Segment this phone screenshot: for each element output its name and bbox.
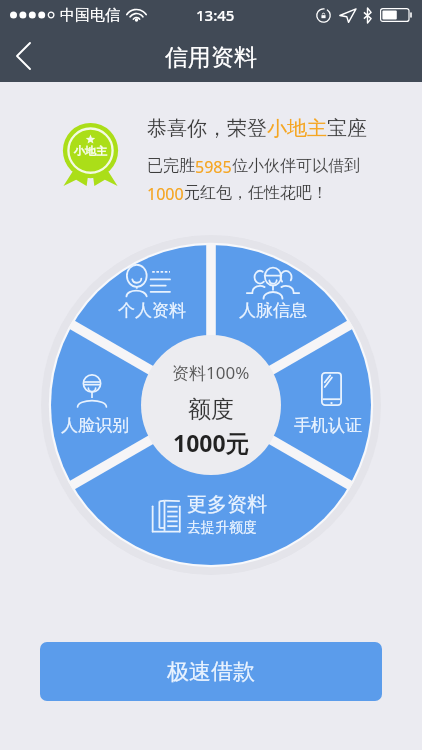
- staticText: 个人资料: [118, 300, 186, 321]
- staticText: 5985: [195, 156, 232, 178]
- staticText: 宝座: [327, 116, 367, 141]
- staticText: 恭喜你，荣登: [147, 116, 267, 141]
- staticText: 更多资料: [187, 492, 267, 517]
- staticText: 人脉信息: [239, 300, 307, 321]
- staticText: 已完胜: [147, 156, 195, 176]
- staticText: 资料100%: [172, 361, 250, 384]
- staticText: 去提升额度: [187, 519, 257, 537]
- staticText: 额度: [188, 395, 234, 424]
- staticText: 小地主: [267, 116, 327, 141]
- staticText: 手机认证: [294, 415, 362, 436]
- staticText: 位小伙伴可以借到: [232, 156, 360, 176]
- staticText: 元红包，任性花吧！: [184, 183, 328, 203]
- staticText: 13:45: [196, 5, 235, 25]
- button[interactable]: 极速借款: [40, 642, 382, 701]
- staticText: 小地主: [74, 144, 107, 158]
- staticText: 极速借款: [167, 658, 255, 686]
- staticText: 中国电信: [60, 6, 120, 25]
- button[interactable]: Back: [0, 30, 47, 82]
- staticText: 人脸识别: [61, 415, 129, 436]
- staticText: 1000元: [173, 427, 249, 458]
- staticText: 1000: [147, 183, 184, 205]
- staticText: 信用资料: [165, 43, 257, 72]
